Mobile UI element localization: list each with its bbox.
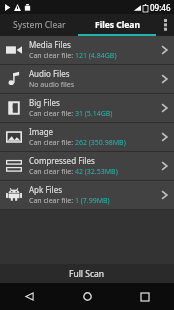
staticText: Image	[29, 126, 54, 137]
button[interactable]: Apk Files	[0, 181, 174, 209]
button[interactable]: Audio Files	[0, 65, 174, 93]
button[interactable]: More options	[156, 14, 174, 36]
button[interactable]: Big Files	[0, 94, 174, 122]
staticText: Can clear file: 1 (7.99MB)	[29, 196, 110, 206]
staticText: Full Scan	[69, 268, 105, 280]
button[interactable]: Files Clean	[78, 14, 156, 36]
staticText: No audio files	[29, 80, 75, 90]
button[interactable]: System Clear	[0, 14, 78, 36]
staticText: Can clear file: 121 (4.84GB)	[29, 51, 117, 61]
staticText: Audio Files	[29, 68, 70, 79]
staticText: Big Files	[29, 97, 60, 108]
staticText: System Clear	[13, 19, 66, 31]
staticText: Can clear file: 31 (5.14GB)	[29, 109, 113, 119]
staticText: 09:46	[150, 2, 171, 13]
button[interactable]: Image	[0, 123, 174, 151]
button[interactable]: Back	[0, 283, 58, 310]
button[interactable]: Recent apps	[116, 283, 174, 310]
staticText: Can clear file: 262 (350.98MB)	[29, 138, 126, 148]
staticText: Can clear file: 42 (32.53MB)	[29, 167, 118, 177]
staticText: Media Files	[29, 39, 71, 50]
button[interactable]: Compressed Files	[0, 152, 174, 180]
button[interactable]: Full Scan	[0, 264, 174, 283]
staticText: Apk Files	[29, 184, 63, 195]
button[interactable]: Media Files	[0, 36, 174, 64]
staticText: Compressed Files	[29, 155, 95, 166]
staticText: Files Clean	[95, 19, 140, 31]
button[interactable]: Home	[58, 283, 116, 310]
